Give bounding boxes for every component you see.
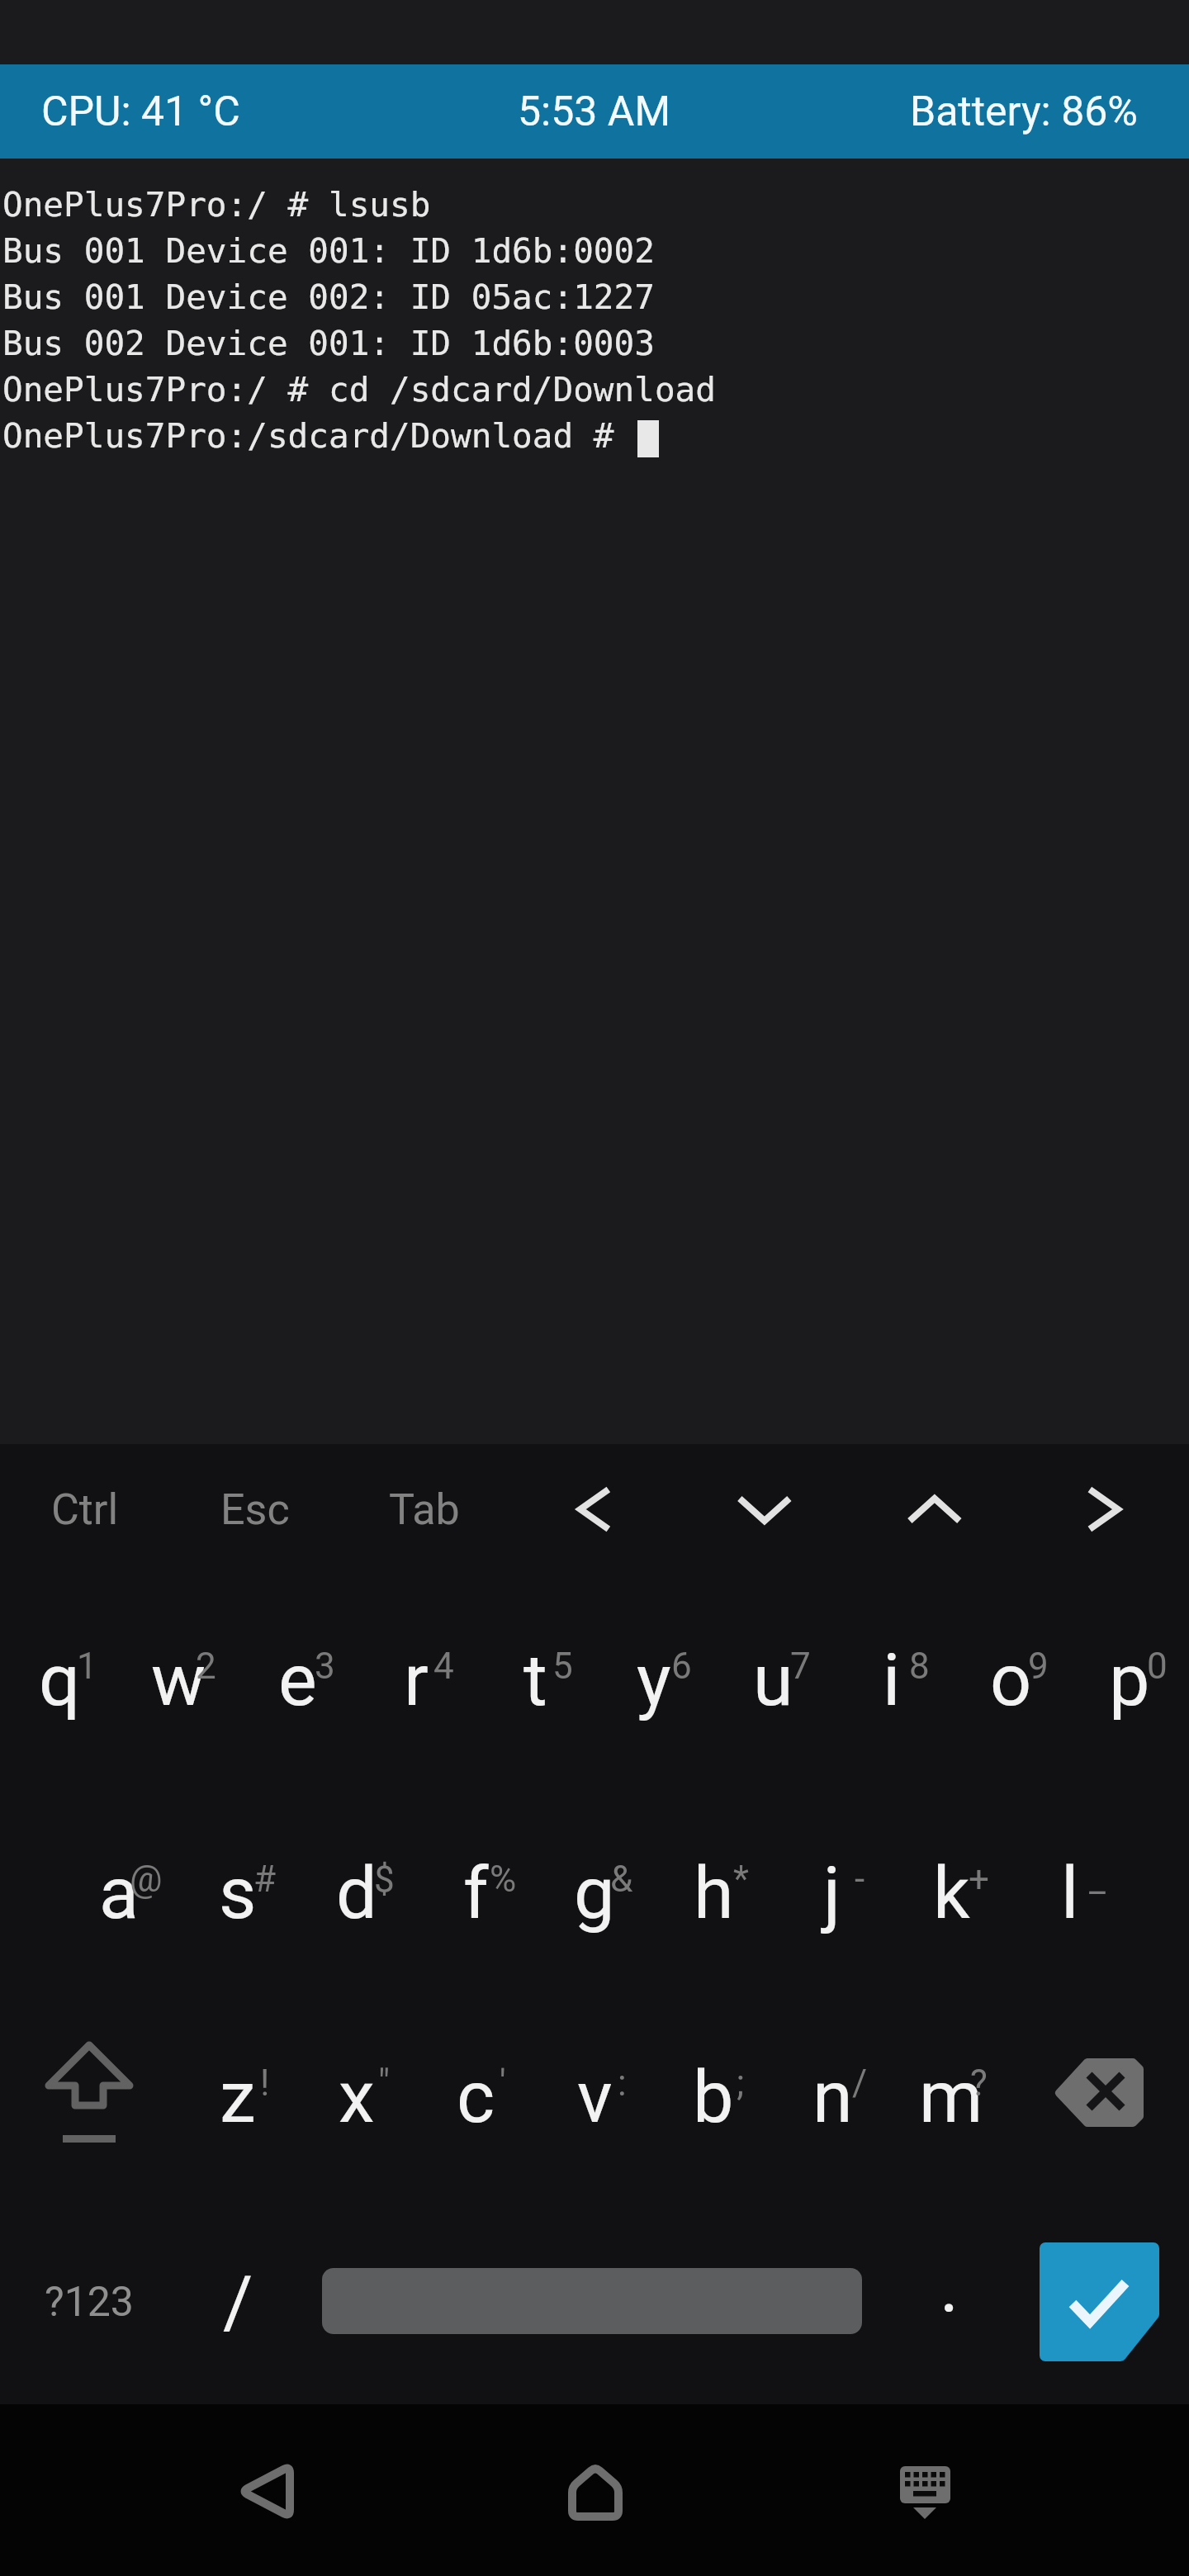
staticText: b: [693, 2054, 734, 2139]
staticText: 0: [1147, 1645, 1168, 1688]
staticText: -: [855, 1858, 865, 1901]
button[interactable]: .: [892, 2200, 1011, 2404]
button[interactable]: x: [297, 1992, 416, 2200]
staticText: Battery: 86%: [910, 88, 1138, 136]
staticText: Ctrl: [51, 1485, 119, 1535]
staticText: h: [694, 1850, 734, 1935]
button[interactable]: Esc: [170, 1444, 340, 1575]
staticText: 2: [196, 1645, 216, 1688]
staticText: 8: [909, 1645, 930, 1688]
staticText: v: [577, 2054, 613, 2139]
staticText: %: [490, 1858, 517, 1901]
staticText: z: [220, 2054, 256, 2139]
button[interactable]: n: [773, 1992, 892, 2200]
staticText: 5: [552, 1645, 573, 1688]
staticText: r: [404, 1637, 429, 1722]
button[interactable]: p: [1070, 1575, 1189, 1783]
button[interactable]: ?123: [0, 2200, 178, 2404]
staticText: 7: [790, 1645, 811, 1688]
button[interactable]: [297, 2200, 892, 2404]
staticText: *: [733, 1858, 749, 1901]
staticText: 4: [433, 1645, 454, 1688]
button[interactable]: [850, 1444, 1020, 1575]
staticText: 3: [315, 1645, 335, 1688]
staticText: _: [1089, 1858, 1106, 1901]
button[interactable]: [206, 2431, 325, 2550]
staticText: j: [823, 1850, 841, 1935]
button[interactable]: q: [0, 1575, 119, 1783]
staticText: Esc: [220, 1485, 290, 1535]
staticText: i: [883, 1637, 901, 1722]
button[interactable]: [865, 2431, 984, 2550]
staticText: ;: [737, 2062, 745, 2105]
staticText: m: [919, 2054, 983, 2139]
button[interactable]: e: [238, 1575, 357, 1783]
staticText: ": [378, 2062, 391, 2105]
button[interactable]: b: [654, 1992, 773, 2200]
button[interactable]: Ctrl: [0, 1444, 170, 1575]
button[interactable]: /: [178, 2200, 297, 2404]
button[interactable]: u: [713, 1575, 832, 1783]
button[interactable]: a: [59, 1788, 178, 1996]
button[interactable]: r: [357, 1575, 476, 1783]
staticText: $: [374, 1858, 395, 1901]
button[interactable]: [0, 1996, 178, 2200]
button[interactable]: i: [832, 1575, 951, 1783]
button[interactable]: s: [178, 1788, 297, 1996]
staticText: CPU: 41 °C: [41, 88, 240, 136]
staticText: w: [151, 1637, 206, 1722]
staticText: d: [336, 1850, 377, 1935]
button[interactable]: [1019, 1444, 1189, 1575]
button[interactable]: g: [535, 1788, 654, 1996]
staticText: 6: [671, 1645, 692, 1688]
button[interactable]: z: [178, 1992, 297, 2200]
button[interactable]: w: [119, 1575, 238, 1783]
button[interactable]: c: [416, 1992, 535, 2200]
staticText: /: [852, 2062, 868, 2105]
button[interactable]: l: [1011, 1788, 1130, 1996]
button[interactable]: [1011, 2200, 1189, 2404]
staticText: o: [990, 1637, 1032, 1722]
staticText: x: [339, 2054, 375, 2139]
button[interactable]: [680, 1444, 850, 1575]
staticText: +: [969, 1858, 989, 1901]
staticText: !: [260, 2062, 270, 2105]
staticText: ?123: [45, 2278, 134, 2327]
staticText: a: [99, 1850, 139, 1935]
staticText: l: [1061, 1850, 1079, 1935]
staticText: y: [637, 1637, 671, 1722]
button[interactable]: [509, 1444, 680, 1575]
button[interactable]: [1011, 1996, 1189, 2200]
staticText: k: [933, 1850, 970, 1935]
staticText: g: [574, 1850, 615, 1935]
staticText: Tab: [389, 1485, 460, 1535]
staticText: &: [610, 1858, 633, 1901]
button[interactable]: d: [297, 1788, 416, 1996]
button[interactable]: j: [773, 1788, 892, 1996]
staticText: .: [940, 2243, 959, 2328]
staticText: #: [253, 1858, 277, 1901]
staticText: n: [812, 2054, 853, 2139]
staticText: q: [39, 1637, 81, 1722]
staticText: OnePlus7Pro:/ # lsusb Bus 001 Device 001…: [2, 185, 716, 455]
staticText: t: [523, 1637, 547, 1722]
staticText: @: [130, 1858, 163, 1901]
button[interactable]: h: [654, 1788, 773, 1996]
button[interactable]: m: [892, 1992, 1011, 2200]
button[interactable]: f: [416, 1788, 535, 1996]
button[interactable]: t: [476, 1575, 594, 1783]
button[interactable]: v: [535, 1992, 654, 2200]
staticText: u: [753, 1637, 793, 1722]
staticText: p: [1109, 1637, 1150, 1722]
staticText: ?: [970, 2062, 988, 2105]
staticText: 1: [77, 1645, 97, 1688]
button[interactable]: o: [951, 1575, 1070, 1783]
staticText: s: [219, 1850, 257, 1935]
staticText: c: [457, 2054, 495, 2139]
staticText: :: [618, 2062, 627, 2105]
button[interactable]: k: [892, 1788, 1011, 1996]
staticText: /: [223, 2260, 253, 2345]
button[interactable]: y: [594, 1575, 713, 1783]
button[interactable]: [535, 2431, 654, 2550]
button[interactable]: Tab: [339, 1444, 509, 1575]
